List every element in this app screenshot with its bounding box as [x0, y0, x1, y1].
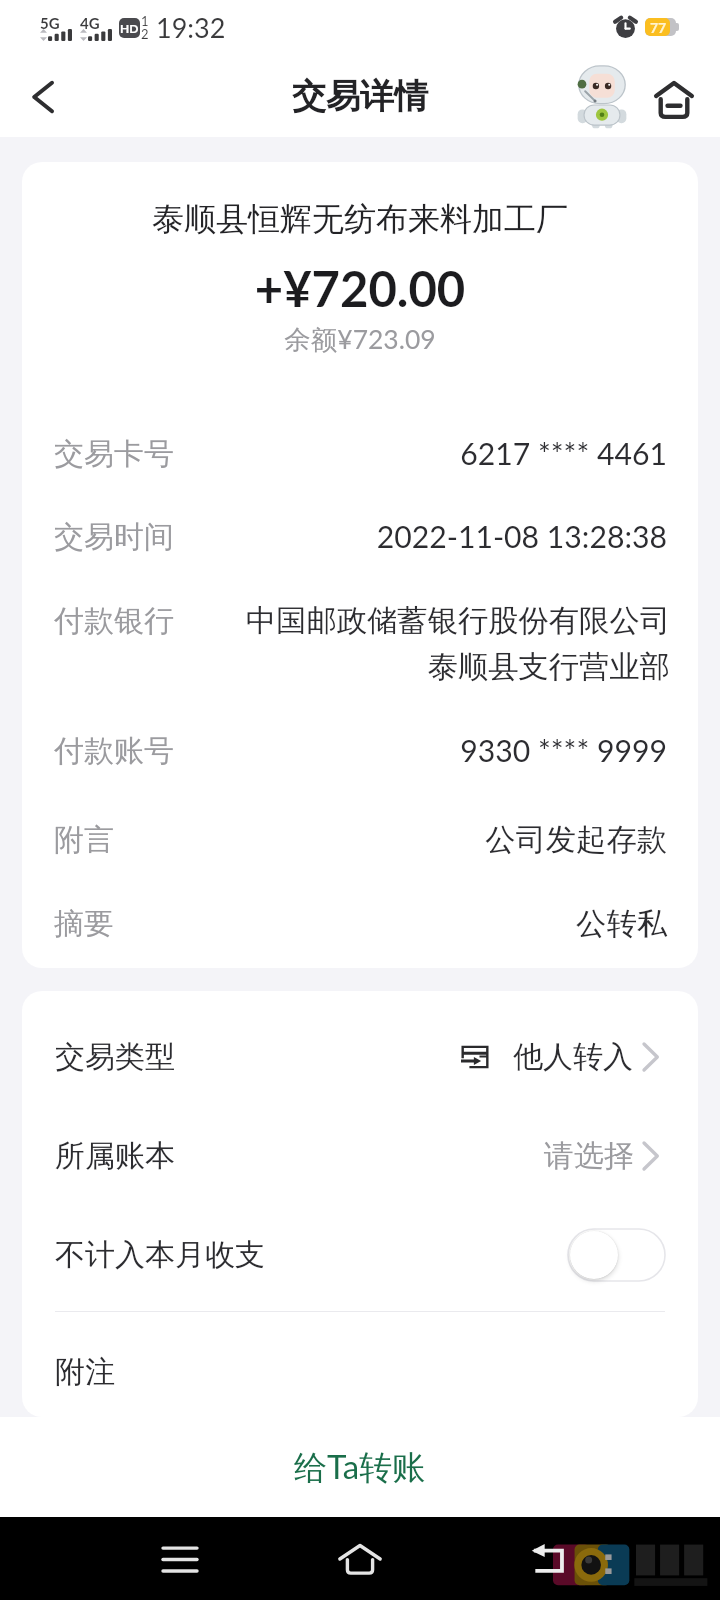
staticText: 公转私 [127, 905, 667, 943]
staticText: HD [120, 21, 139, 35]
staticText: 摘要 [54, 905, 114, 943]
staticText: 付款银行 [54, 602, 174, 640]
staticText: 交易卡号 [54, 435, 174, 473]
staticText: 公司发起存款 [127, 821, 667, 859]
button[interactable]: Assistant [565, 56, 641, 137]
staticText: 不计入本月收支 [55, 1236, 265, 1274]
staticText: 2022-11-08 13:28:38 [187, 518, 667, 554]
staticText: 6217 **** 4461 [187, 435, 667, 471]
staticText: 给Ta转账 [294, 1446, 426, 1488]
staticText: 请选择 [544, 1137, 634, 1175]
staticText: 交易详情 [292, 75, 428, 118]
staticText: 付款账号 [54, 732, 174, 770]
staticText: 所属账本 [55, 1137, 175, 1175]
button[interactable]: Recents [135, 1517, 225, 1600]
button[interactable]: Back [504, 1517, 594, 1600]
staticText: 余额¥723.09 [54, 323, 666, 357]
button[interactable]: 所属账本 [22, 1106, 698, 1205]
staticText: 77 [650, 19, 667, 36]
staticText: +¥720.00 [54, 259, 666, 318]
staticText: 交易时间 [54, 518, 174, 556]
button[interactable]: 附注 [22, 1330, 698, 1413]
staticText: 附言 [54, 821, 114, 859]
button[interactable] [568, 1229, 665, 1281]
staticText: 19:32 [156, 11, 226, 43]
staticText: 5G [40, 14, 60, 32]
staticText: 2 [141, 26, 149, 42]
staticText: 他人转入 [513, 1038, 633, 1076]
staticText: 交易类型 [55, 1038, 175, 1076]
staticText: 1 [141, 13, 149, 29]
button[interactable]: Home [315, 1517, 405, 1600]
button[interactable]: 给Ta转账 [0, 1417, 720, 1517]
button[interactable]: 交易类型 [22, 1007, 698, 1106]
staticText: 4G [80, 14, 100, 32]
staticText: 9330 **** 9999 [187, 732, 667, 768]
staticText: 中国邮政储蓄银行股份有限公司 泰顺县支行营业部 [190, 602, 670, 686]
button[interactable]: Home [641, 56, 707, 137]
staticText: 泰顺县恒辉无纺布来料加工厂 [54, 199, 666, 239]
button[interactable]: Back [0, 56, 86, 137]
staticText: 附注 [55, 1353, 115, 1391]
